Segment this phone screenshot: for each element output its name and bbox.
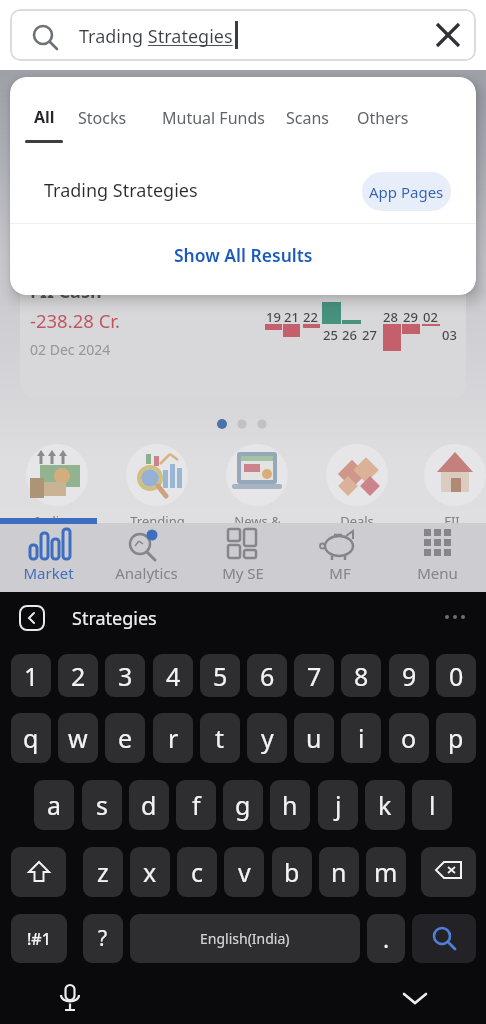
button[interactable]: Strategies (60, 598, 210, 638)
staticText: Strategies (72, 606, 157, 631)
staticText: u (306, 721, 322, 755)
button[interactable]: 8 (341, 654, 381, 697)
button[interactable]: e (105, 713, 145, 763)
staticText: App Pages (369, 182, 444, 202)
staticText: !#1 (27, 928, 51, 950)
button[interactable]: x (130, 847, 170, 897)
button[interactable]: 1 (11, 654, 51, 697)
button[interactable] (11, 847, 66, 897)
button[interactable]: f (176, 780, 216, 830)
button[interactable] (97, 523, 194, 592)
button[interactable]: g (223, 780, 263, 830)
button[interactable]: Show All Results (10, 224, 476, 286)
button[interactable]: l (412, 780, 452, 830)
button[interactable] (393, 976, 437, 1020)
staticText: r (168, 721, 179, 755)
button[interactable]: 4 (153, 654, 193, 697)
button[interactable]: j (318, 780, 358, 830)
button[interactable]: c (177, 847, 217, 897)
button[interactable]: All (24, 103, 84, 143)
staticText: My SE (222, 563, 264, 583)
staticText: x (143, 855, 157, 889)
button[interactable]: Stocks (72, 103, 142, 133)
button[interactable]: s (82, 780, 122, 830)
button[interactable]: z (83, 847, 123, 897)
button[interactable] (10, 598, 54, 638)
staticText: i (358, 721, 365, 755)
staticText: 4 (166, 659, 181, 693)
button[interactable]: Trading Strategies (10, 157, 476, 223)
staticText: y (261, 721, 274, 755)
button[interactable]: b (272, 847, 312, 897)
button[interactable] (430, 17, 466, 53)
staticText: MF (329, 563, 351, 583)
staticText: English(India) (200, 929, 290, 948)
button[interactable]: i (341, 713, 381, 763)
button[interactable]: n (319, 847, 359, 897)
staticText: Mutual Funds (162, 107, 265, 129)
staticText: l (429, 788, 436, 822)
button[interactable]: !#1 (11, 914, 67, 963)
staticText: 6 (260, 659, 275, 693)
staticText: 2 (71, 659, 86, 693)
staticText: v (238, 855, 251, 889)
staticText: Analytics (115, 563, 178, 583)
staticText: 03 (442, 326, 457, 344)
button[interactable]: t (200, 713, 240, 763)
staticText: p (448, 721, 464, 755)
button[interactable]: d (129, 780, 169, 830)
button[interactable]: o (389, 713, 429, 763)
button[interactable]: u (294, 713, 334, 763)
button[interactable]: 3 (105, 654, 145, 697)
button[interactable]: Scans (280, 103, 340, 133)
button[interactable]: App Pages (362, 172, 451, 211)
button[interactable]: English(India) (130, 914, 360, 963)
button[interactable]: q (11, 713, 51, 763)
staticText: j (335, 788, 342, 822)
staticText: 8 (354, 659, 369, 693)
staticText: 27 (362, 326, 377, 344)
button[interactable] (291, 523, 388, 592)
staticText: Deals (340, 512, 374, 530)
button[interactable]: . (367, 914, 405, 963)
staticText: 22 (303, 308, 318, 326)
button[interactable]: ? (83, 914, 123, 963)
button[interactable]: r (153, 713, 193, 763)
button[interactable]: m (366, 847, 406, 897)
staticText: Show All Results (174, 243, 313, 267)
staticText: 5 (213, 659, 228, 693)
button[interactable] (421, 847, 476, 897)
button[interactable] (388, 523, 486, 592)
staticText: 9 (402, 659, 417, 693)
staticText: t (215, 721, 225, 755)
button[interactable] (0, 523, 97, 592)
button[interactable]: Mutual Funds (155, 103, 265, 133)
staticText: f (192, 788, 201, 822)
staticText: e (118, 721, 133, 755)
button[interactable]: w (58, 713, 98, 763)
button[interactable] (194, 523, 291, 592)
staticText: o (401, 721, 417, 755)
button[interactable]: h (270, 780, 310, 830)
button[interactable]: 9 (389, 654, 429, 697)
button[interactable]: k (365, 780, 405, 830)
button[interactable]: 2 (58, 654, 98, 697)
button[interactable] (48, 976, 92, 1020)
staticText: c (191, 855, 204, 889)
staticText: w (68, 721, 88, 755)
button[interactable]: a (34, 780, 74, 830)
button[interactable]: 6 (247, 654, 287, 697)
staticText: Menu (417, 563, 458, 583)
staticText: -238.28 Cr. (30, 308, 120, 333)
button[interactable]: 5 (200, 654, 240, 697)
staticText: 28 (383, 308, 398, 326)
button[interactable]: y (247, 713, 287, 763)
button[interactable] (412, 914, 476, 963)
button[interactable]: Others (351, 103, 421, 133)
button[interactable]: 7 (294, 654, 334, 697)
staticText: 7 (307, 659, 322, 693)
button[interactable]: v (224, 847, 264, 897)
staticText: FII (444, 512, 460, 530)
button[interactable]: 0 (436, 654, 476, 697)
button[interactable]: p (436, 713, 476, 763)
